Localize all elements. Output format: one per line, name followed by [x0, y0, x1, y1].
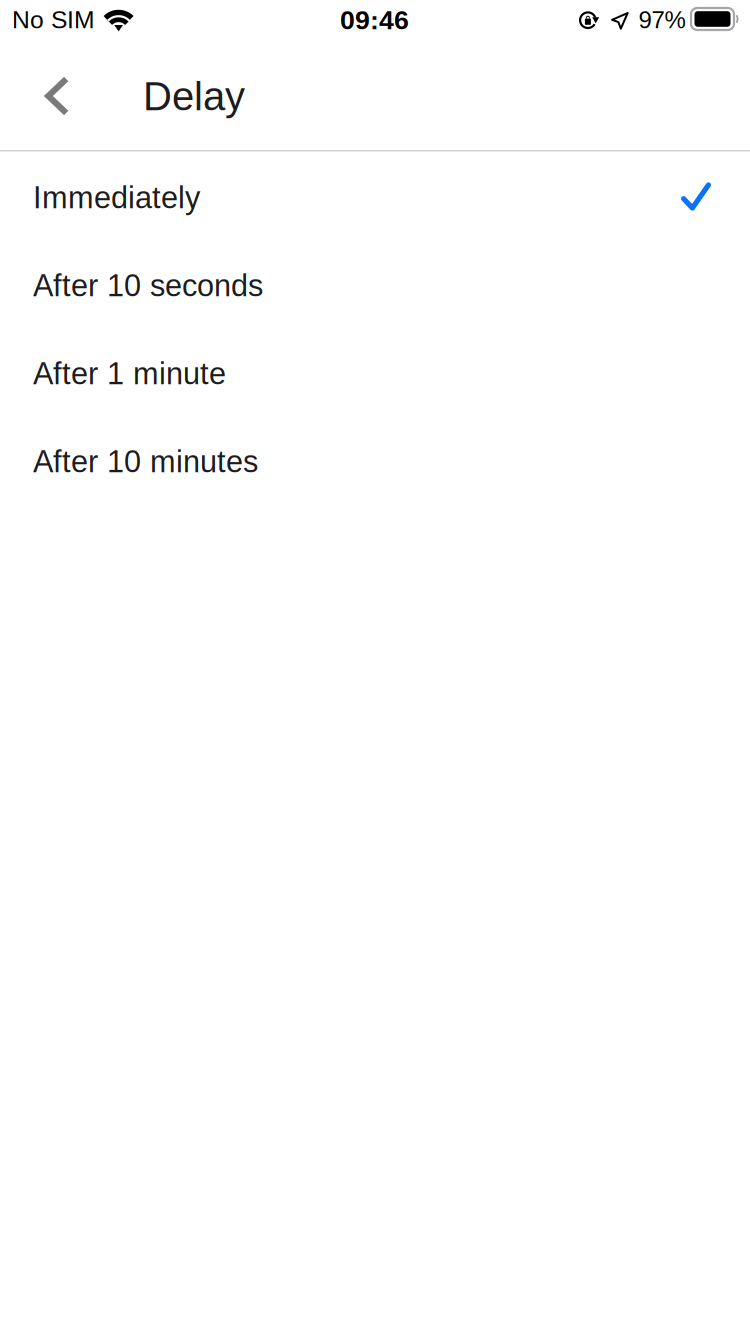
button[interactable]: After 1 minute	[0, 327, 750, 415]
staticText: Delay	[143, 74, 245, 119]
staticText: Immediately	[33, 180, 200, 215]
staticText: After 10 seconds	[33, 268, 263, 303]
button[interactable]: Back	[0, 40, 88, 132]
staticText: 09:46	[340, 5, 409, 35]
staticText: After 1 minute	[33, 356, 226, 391]
button[interactable]: After 10 seconds	[0, 239, 750, 327]
button[interactable]: After 10 minutes	[0, 415, 750, 503]
staticText: No SIM	[12, 6, 95, 34]
button[interactable]: Immediately	[0, 151, 750, 239]
staticText: After 10 minutes	[33, 444, 258, 479]
staticText: 97%	[638, 6, 685, 33]
